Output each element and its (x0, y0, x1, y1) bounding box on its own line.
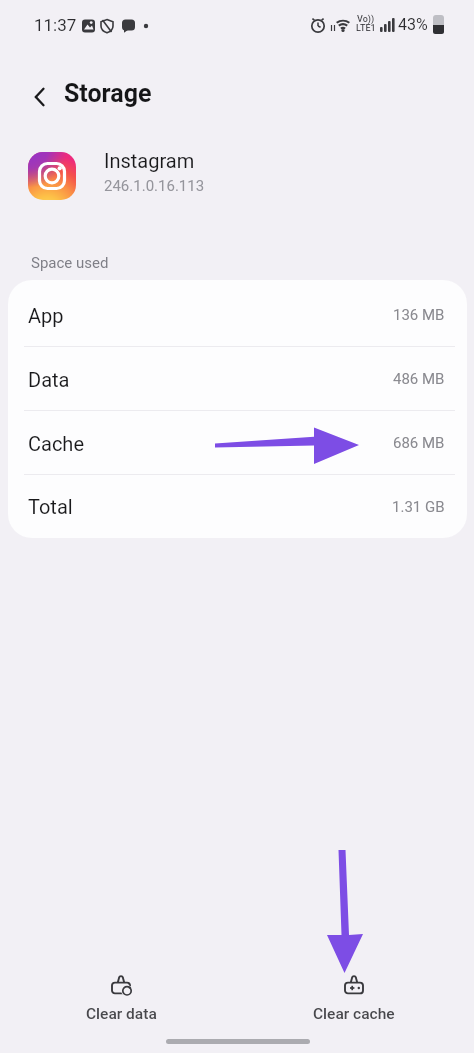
staticText: 11:37 (34, 15, 77, 35)
staticText: Data (28, 368, 70, 391)
staticText: 486 MB (393, 370, 445, 388)
staticText: 1.31 GB (392, 498, 445, 516)
button[interactable] (20, 77, 60, 117)
staticText: 136 MB (393, 306, 445, 324)
staticText: Instagram (104, 149, 195, 172)
staticText: Clear data (86, 1005, 157, 1023)
staticText: Vo)) (357, 14, 375, 25)
staticText: 43% (398, 15, 428, 34)
staticText: LTE1 (356, 23, 376, 34)
staticText: 246.1.0.16.113 (104, 177, 205, 195)
staticText: 686 MB (393, 434, 445, 452)
staticText: Cache (28, 432, 84, 455)
button[interactable]: Clear cache (294, 973, 414, 1023)
staticText: Space used (31, 254, 109, 272)
button[interactable]: Clear data (61, 973, 181, 1023)
staticText: Total (28, 495, 73, 518)
staticText: App (28, 304, 64, 327)
staticText: Storage (64, 79, 152, 108)
staticText: Clear cache (313, 1005, 395, 1023)
